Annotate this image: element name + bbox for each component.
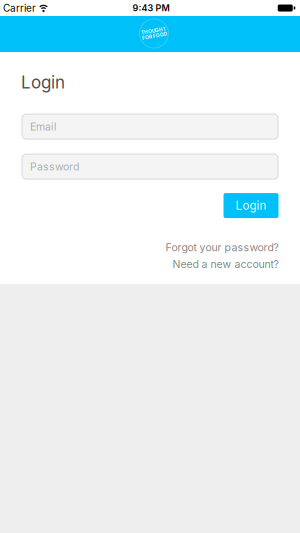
- staticText: Carrier: [3, 2, 36, 14]
- staticText: Login: [21, 72, 65, 93]
- staticText: FOR FOOD: [141, 33, 166, 39]
- staticText: Forgot your password?: [165, 241, 278, 254]
- button[interactable]: Forgot your password?: [165, 241, 278, 254]
- button[interactable]: Need a new account?: [172, 258, 278, 270]
- staticText: Password: [30, 160, 79, 173]
- button[interactable]: Password: [22, 154, 278, 179]
- button[interactable]: Email: [22, 114, 278, 139]
- staticText: Login: [235, 199, 266, 212]
- staticText: 9:43 PM: [132, 3, 169, 13]
- staticText: THOUGHT: [141, 28, 166, 34]
- staticText: Need a new account?: [172, 258, 278, 270]
- staticText: Email: [30, 120, 57, 133]
- button[interactable]: Login: [223, 193, 278, 218]
